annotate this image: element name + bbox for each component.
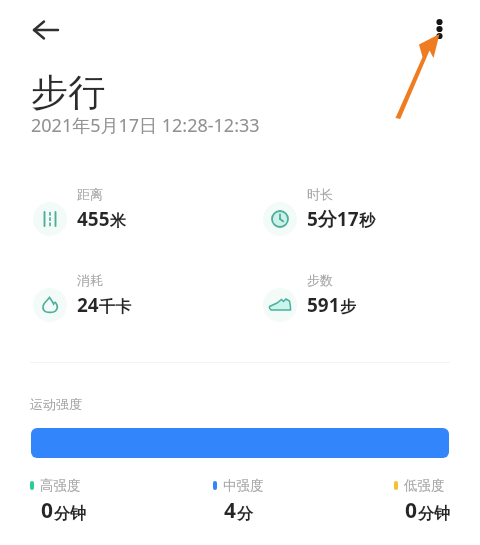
- staticText: 0: [41, 496, 54, 525]
- staticText: 步数: [307, 272, 333, 288]
- staticText: 运动强度: [30, 396, 82, 412]
- button[interactable]: 时长: [263, 186, 375, 232]
- staticText: 时长: [307, 186, 333, 202]
- staticText: 0: [405, 496, 418, 525]
- staticText: 分钟: [54, 504, 86, 524]
- staticText: 分钟: [418, 504, 450, 524]
- button[interactable]: 高强度: [30, 477, 81, 525]
- staticText: 高强度: [40, 477, 81, 494]
- button[interactable]: More options: [427, 8, 451, 44]
- staticText: 分: [237, 504, 253, 524]
- staticText: 消耗: [77, 272, 103, 288]
- button[interactable]: 距离: [33, 186, 126, 232]
- button[interactable]: 中强度: [213, 477, 264, 525]
- staticText: 5分17: [307, 206, 359, 232]
- staticText: 2021年5月17日 12:28-12:33: [31, 113, 260, 138]
- staticText: 步: [340, 297, 356, 317]
- staticText: 低强度: [404, 477, 445, 494]
- staticText: 距离: [77, 186, 103, 202]
- button[interactable]: 步数: [263, 272, 356, 318]
- button[interactable]: 低强度: [394, 477, 445, 525]
- staticText: 24: [77, 292, 99, 318]
- staticText: 米: [110, 211, 126, 231]
- staticText: 中强度: [223, 477, 264, 494]
- button[interactable]: 消耗: [33, 272, 131, 318]
- staticText: 步行: [31, 69, 105, 116]
- staticText: 591: [307, 292, 340, 318]
- staticText: 4: [224, 496, 237, 525]
- staticText: 455: [77, 206, 110, 232]
- staticText: 秒: [359, 211, 375, 231]
- staticText: 千卡: [99, 297, 131, 317]
- button[interactable]: Back: [27, 15, 59, 47]
